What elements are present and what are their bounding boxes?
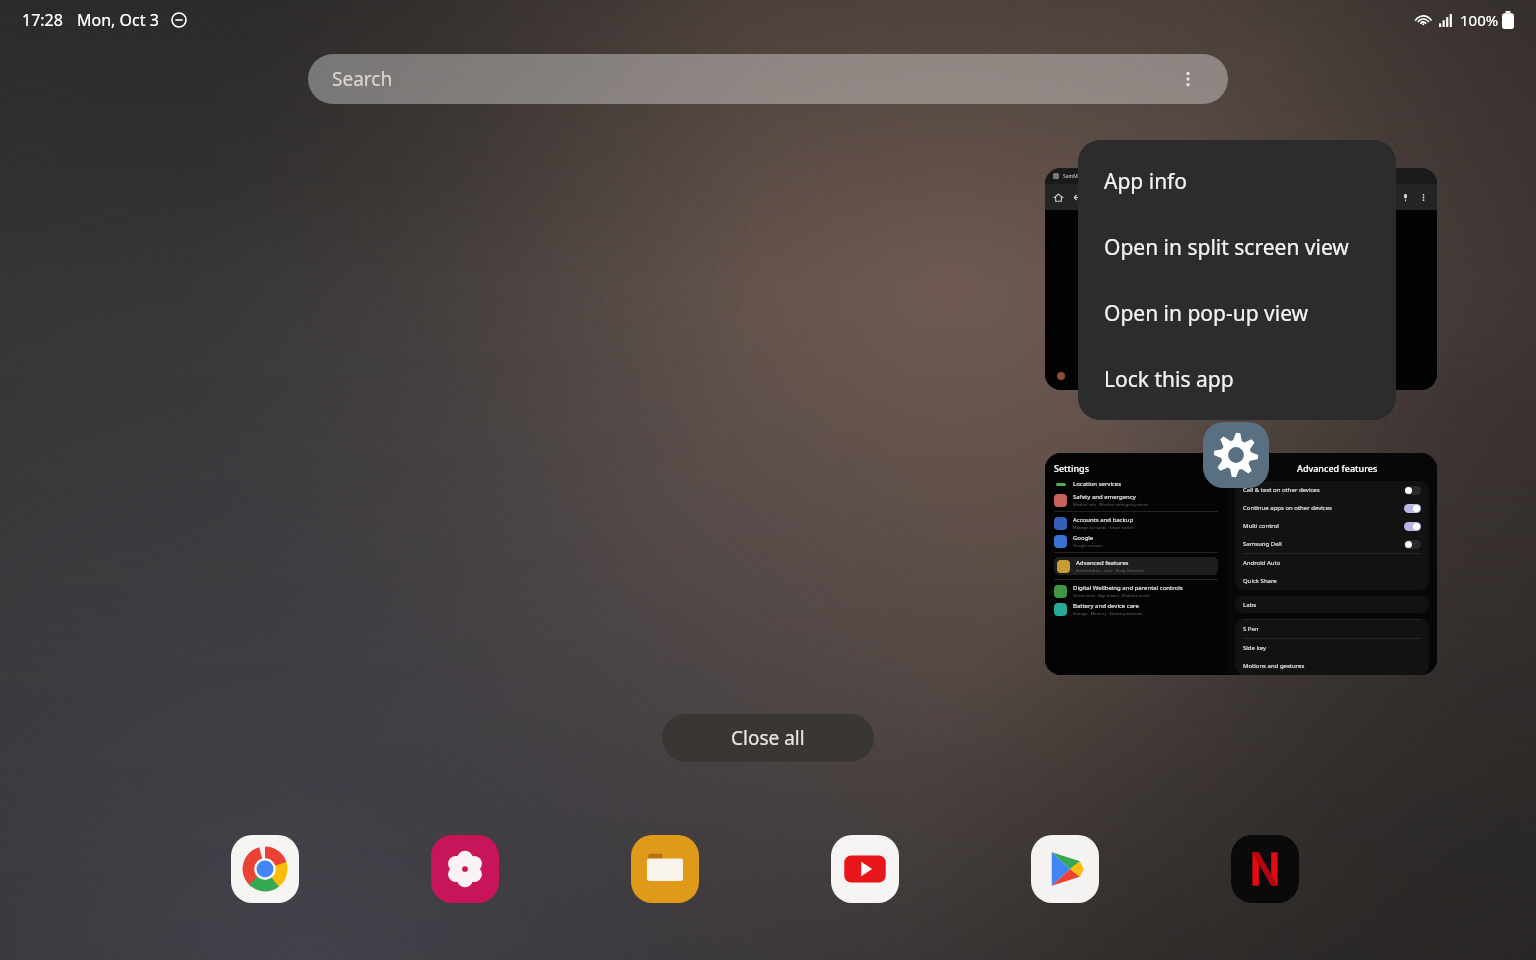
button[interactable]: Play Store bbox=[1025, 829, 1105, 909]
button[interactable]: Advanced features bbox=[1057, 559, 1215, 573]
button[interactable]: More options bbox=[1172, 63, 1204, 95]
button[interactable]: My Files bbox=[625, 829, 705, 909]
button[interactable]: App info bbox=[1078, 148, 1396, 214]
staticText: Android Auto · Labs · Bixby Routines bbox=[1076, 568, 1144, 573]
staticText: Open in split screen view bbox=[1104, 233, 1349, 262]
button[interactable]: Settings app icon bbox=[1203, 422, 1269, 488]
staticText: Accounts and backup bbox=[1073, 516, 1134, 524]
staticText: Storage · Memory · Device protection bbox=[1073, 611, 1143, 616]
staticText: Side key bbox=[1243, 644, 1267, 652]
button[interactable]: Close all bbox=[662, 714, 874, 762]
button[interactable]: S Pen bbox=[1243, 620, 1421, 638]
button[interactable]: Samsung DeX bbox=[1243, 535, 1421, 553]
staticText: App info bbox=[1104, 167, 1188, 196]
staticText: Close all bbox=[731, 725, 805, 751]
staticText: Multi control bbox=[1243, 522, 1404, 530]
button[interactable]: Netflix bbox=[1225, 829, 1305, 909]
button[interactable]: Android Auto bbox=[1243, 554, 1421, 572]
staticText: Quick Share bbox=[1243, 577, 1277, 585]
button[interactable]: YouTube bbox=[825, 829, 905, 909]
staticText: Screen time · App timers · Bedtime mode bbox=[1073, 593, 1150, 598]
staticText: Location services bbox=[1073, 480, 1122, 488]
button[interactable]: Accounts and backup bbox=[1054, 516, 1218, 530]
button[interactable]: Digital Wellbeing and parental controls bbox=[1054, 584, 1218, 598]
button[interactable]: Settings bbox=[1045, 453, 1437, 675]
staticText: Motions and gestures bbox=[1243, 662, 1305, 670]
button[interactable]: Lock this app bbox=[1078, 346, 1396, 412]
staticText: Safety and emergency bbox=[1073, 493, 1136, 501]
button[interactable]: Safety and emergency bbox=[1054, 493, 1218, 507]
button[interactable]: SamM… bbox=[1045, 168, 1437, 390]
staticText: Mon, Oct 3 bbox=[77, 9, 159, 31]
button[interactable]: Chrome bbox=[225, 829, 305, 909]
button[interactable]: Open in pop-up view bbox=[1078, 280, 1396, 346]
button[interactable]: Google bbox=[1054, 534, 1218, 548]
staticText: Labs bbox=[1243, 601, 1257, 609]
staticText: Medical info · Wireless emergency alerts bbox=[1073, 502, 1149, 507]
staticText: Samsung DeX bbox=[1243, 540, 1404, 548]
staticText: Google bbox=[1073, 534, 1094, 542]
button[interactable]: Labs bbox=[1235, 596, 1429, 613]
staticText: Lock this app bbox=[1104, 365, 1234, 394]
staticText: Google services bbox=[1073, 543, 1103, 548]
button[interactable]: Call & text on other devices bbox=[1243, 481, 1421, 499]
button[interactable]: Side key bbox=[1243, 639, 1421, 657]
staticText: Battery and device care bbox=[1073, 602, 1139, 610]
button[interactable]: Advanced features bbox=[1054, 557, 1218, 575]
button[interactable]: Location services bbox=[1054, 480, 1218, 488]
staticText: Advanced features bbox=[1076, 559, 1129, 567]
staticText: 17:28 bbox=[22, 9, 63, 31]
button[interactable]: Continue apps on other devices bbox=[1243, 499, 1421, 517]
staticText: S Pen bbox=[1243, 625, 1259, 633]
button[interactable]: Search bbox=[308, 54, 1228, 104]
staticText: SamM… bbox=[1063, 173, 1082, 180]
staticText: Manage accounts · Smart Switch bbox=[1073, 525, 1134, 530]
button[interactable]: Motions and gestures bbox=[1243, 657, 1421, 675]
staticText: Settings bbox=[1054, 462, 1090, 474]
staticText: Search bbox=[332, 66, 393, 92]
staticText: Open in pop-up view bbox=[1104, 299, 1309, 328]
button[interactable]: Gallery bbox=[425, 829, 505, 909]
button[interactable]: Open in split screen view bbox=[1078, 214, 1396, 280]
button[interactable]: Battery and device care bbox=[1054, 602, 1218, 616]
button[interactable]: Quick Share bbox=[1243, 572, 1421, 590]
staticText: Android Auto bbox=[1243, 559, 1281, 567]
staticText: Digital Wellbeing and parental controls bbox=[1073, 584, 1183, 592]
staticText: Continue apps on other devices bbox=[1243, 504, 1404, 512]
staticText: 100% bbox=[1460, 10, 1499, 30]
staticText: Call & text on other devices bbox=[1243, 486, 1404, 494]
staticText: Advanced features bbox=[1297, 462, 1378, 474]
button[interactable]: Multi control bbox=[1243, 517, 1421, 535]
